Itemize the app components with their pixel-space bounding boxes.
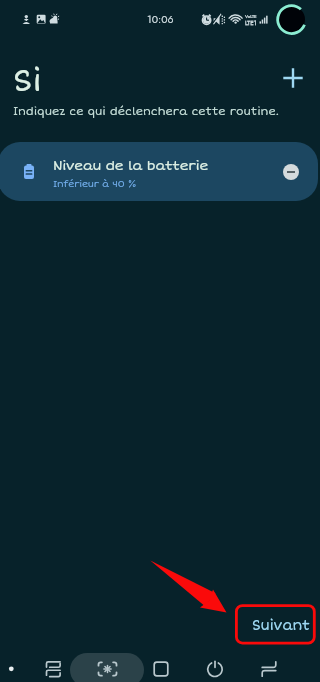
staticText: Inférieur à 40 % bbox=[53, 178, 137, 190]
button[interactable]: Remove trigger bbox=[283, 164, 299, 180]
staticText: 10:06 bbox=[147, 12, 174, 27]
staticText: Niveau de la batterie bbox=[53, 157, 208, 174]
button[interactable]: Split screen bbox=[37, 650, 69, 682]
staticText: Suivant bbox=[252, 617, 310, 634]
staticText: VoLTE bbox=[245, 13, 257, 20]
button[interactable]: Niveau de la batterie bbox=[0, 142, 318, 201]
button[interactable]: Suivant bbox=[235, 604, 316, 645]
staticText: Indiquez ce qui déclenchera cette routin… bbox=[13, 105, 279, 119]
staticText: LTE1 bbox=[245, 18, 257, 27]
button[interactable]: Add bbox=[271, 56, 315, 100]
button[interactable]: Scan bbox=[91, 650, 165, 682]
staticText: Si bbox=[13, 62, 271, 100]
